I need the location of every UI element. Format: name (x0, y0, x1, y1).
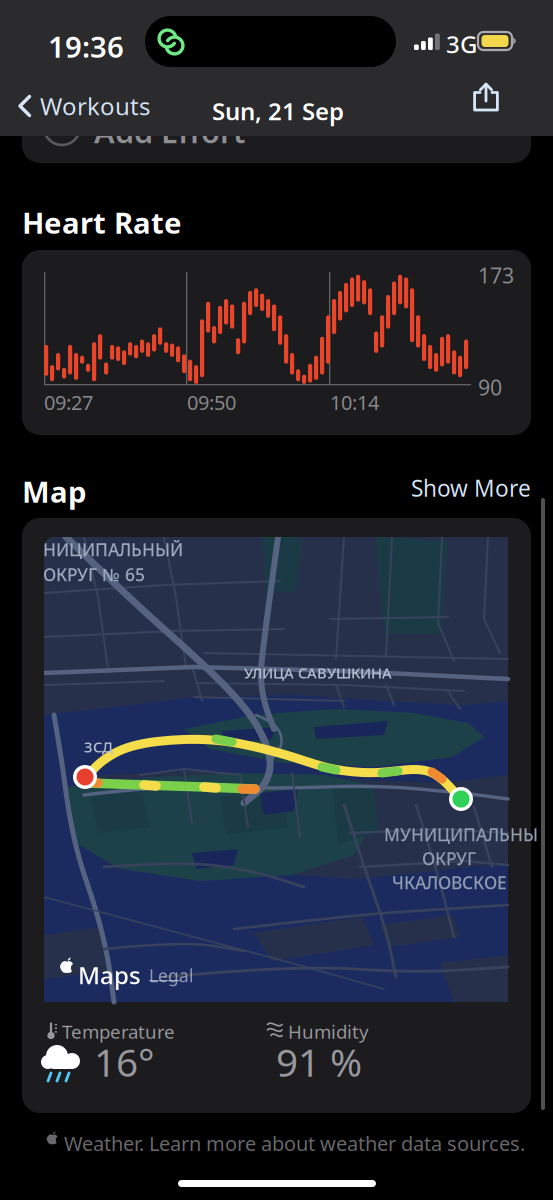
staticText: Maps (78, 959, 141, 991)
staticText: Show More (411, 473, 531, 503)
staticText: ОКРУГ № 65 (43, 563, 145, 586)
button[interactable]: Workouts (3, 83, 167, 129)
staticText: Weather. Learn more about weather data s… (64, 1130, 525, 1157)
staticText: УЛИЦА САВУШКИНА (244, 663, 392, 682)
staticText: Map (22, 472, 87, 511)
staticText: Humidity (288, 1019, 369, 1044)
staticText: Temperature (62, 1019, 175, 1044)
staticText: 16° (94, 1036, 155, 1087)
staticText: НИЦИПАЛЬНЫЙ (43, 538, 183, 561)
staticText: Sun, 21 Sep (212, 95, 344, 127)
staticText: Workouts (40, 90, 150, 122)
staticText: Heart Rate (22, 203, 182, 242)
staticText: Legal (149, 964, 193, 987)
staticText: 90 (478, 373, 502, 401)
staticText: 91 % (276, 1036, 362, 1087)
staticText: 3G (446, 28, 477, 60)
button[interactable]: Share (473, 82, 527, 130)
staticText: ЧКАЛОВСКОЕ (392, 871, 507, 894)
staticText: ОКРУГ (422, 847, 476, 870)
staticText: 173 (478, 261, 514, 289)
button[interactable]: Show More (401, 470, 531, 506)
staticText: 09:50 (187, 389, 236, 416)
button[interactable]: Maps (22, 518, 531, 1113)
staticText: 09:27 (44, 389, 93, 416)
staticText: ЗСД (84, 737, 113, 756)
staticText: 19:36 (48, 27, 124, 66)
staticText: Add Effort (94, 111, 245, 152)
staticText: 10:14 (330, 389, 379, 416)
button[interactable]: Add Effort (22, 33, 531, 163)
staticText: МУНИЦИПАЛЬНЫ (384, 823, 538, 846)
